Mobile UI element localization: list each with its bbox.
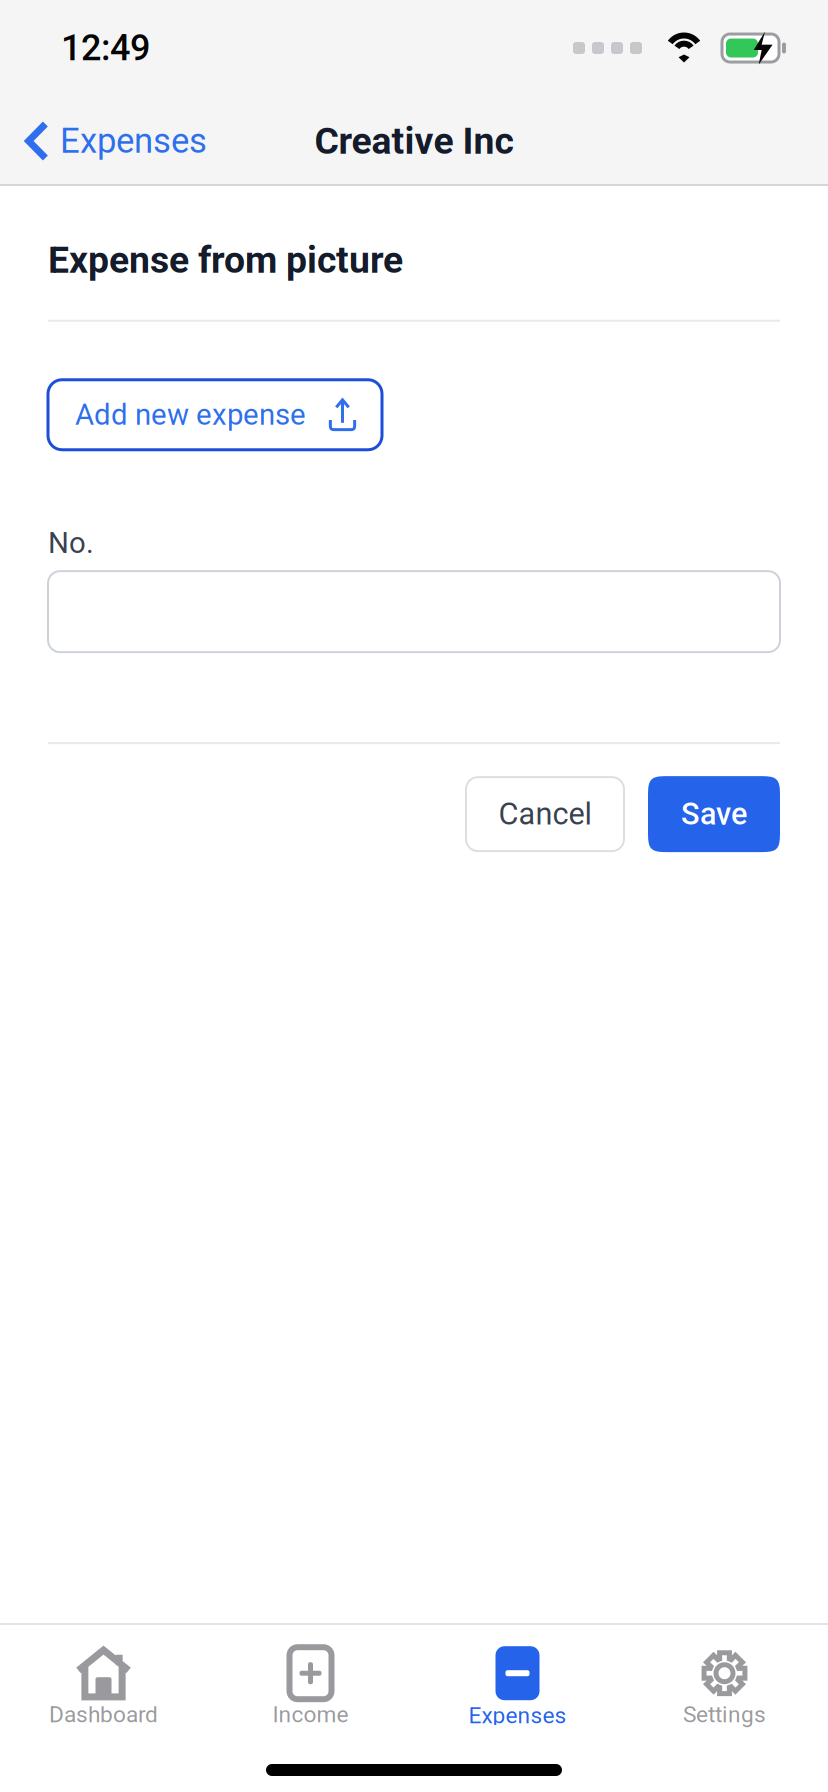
button[interactable]: Income bbox=[207, 1625, 414, 1725]
staticText: Creative Inc bbox=[314, 119, 513, 163]
button[interactable]: Expenses bbox=[414, 1625, 621, 1725]
button[interactable]: Cancel bbox=[466, 777, 624, 851]
staticText: Cancel bbox=[498, 796, 591, 832]
button[interactable]: Add new expense bbox=[48, 380, 382, 450]
staticText: Save bbox=[681, 796, 747, 832]
staticText: Expenses bbox=[468, 1702, 566, 1729]
staticText: Income bbox=[272, 1701, 348, 1728]
staticText: Dashboard bbox=[49, 1701, 158, 1728]
staticText: No. bbox=[48, 526, 94, 560]
staticText: Add new expense bbox=[75, 398, 306, 432]
button[interactable]: Save bbox=[648, 776, 780, 852]
staticText: 12:49 bbox=[61, 27, 150, 69]
button[interactable]: Settings bbox=[621, 1625, 828, 1725]
staticText: Settings bbox=[683, 1701, 766, 1728]
staticText: Expense from picture bbox=[48, 238, 403, 282]
button[interactable]: Expenses bbox=[0, 99, 225, 183]
staticText: Expenses bbox=[60, 121, 207, 161]
button[interactable]: Dashboard bbox=[0, 1625, 207, 1725]
